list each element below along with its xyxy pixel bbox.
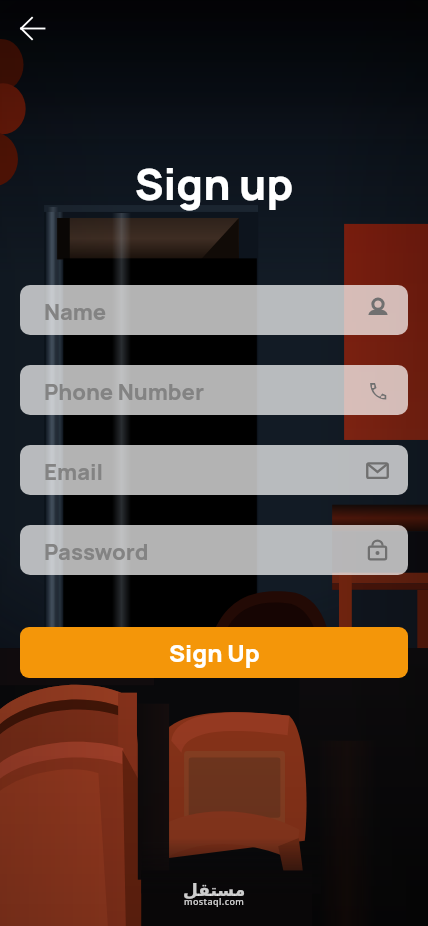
button[interactable]: Back xyxy=(8,4,56,52)
staticText: مستقل xyxy=(183,880,246,900)
staticText: Sign up xyxy=(0,154,428,213)
staticText: Sign Up xyxy=(169,636,260,669)
button[interactable]: Phone Number xyxy=(20,365,408,415)
staticText: mostaql.com xyxy=(184,895,245,907)
staticText: Password xyxy=(44,537,365,567)
staticText: Phone Number xyxy=(44,377,365,407)
staticText: Email xyxy=(44,457,365,487)
button[interactable]: Password xyxy=(20,525,408,575)
button[interactable]: Name xyxy=(20,285,408,335)
button[interactable]: Email xyxy=(20,445,408,495)
button[interactable]: Sign Up xyxy=(20,627,408,678)
staticText: Name xyxy=(44,297,366,327)
